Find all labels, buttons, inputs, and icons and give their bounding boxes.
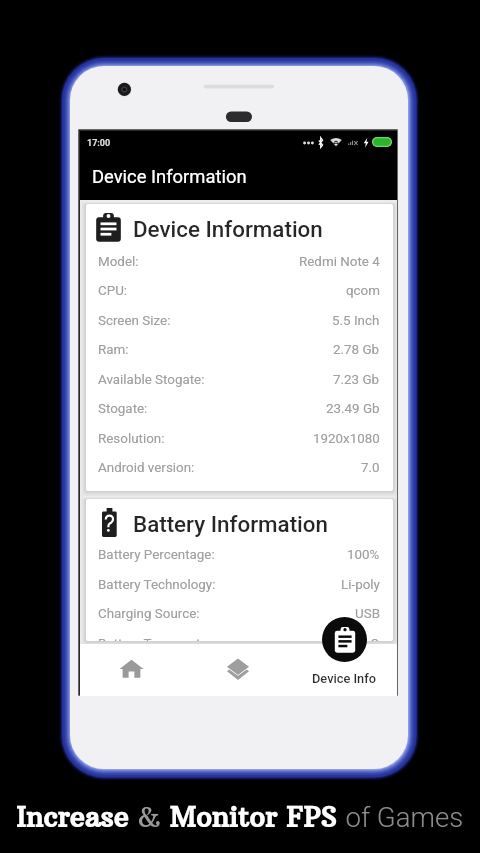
button[interactable]: Home [80,644,185,696]
button[interactable]: Device Information [86,204,393,491]
staticText: 2.78 Gb [333,342,380,358]
staticText: Device Information [92,166,247,188]
staticText: Charging Source: [98,606,200,622]
button[interactable]: Battery Information [86,499,393,641]
staticText: qcom [346,283,380,299]
staticText: Stogate: [98,401,148,417]
staticText: 23.49 Gb [326,401,380,417]
staticText: Model: [98,254,139,270]
staticText: Battery Technology: [98,577,216,593]
button[interactable]: Device Info [322,617,367,662]
staticText: 5.5 Inch [332,313,380,329]
staticText: Battery Information [133,511,328,537]
staticText: 100% [347,547,380,563]
staticText: Device Information [133,216,323,242]
staticText: Battery Temperature: [98,636,223,641]
button[interactable]: Device Information [80,152,397,200]
staticText: Redmi Note 4 [299,254,380,270]
staticText: CPU: [98,283,128,299]
staticText: Android version: [98,460,195,476]
staticText: Increase & Monitor FPS of Games [16,800,464,835]
staticText: USB [355,606,380,622]
staticText: Available Stogate: [98,372,205,388]
staticText: 7.23 Gb [333,372,380,388]
staticText: 1920x1080 [313,431,380,447]
staticText: Li-poly [341,577,380,593]
staticText: Resolution: [98,431,165,447]
staticText: 7.0 [361,460,380,476]
staticText: 30 C [352,636,380,641]
staticText: Device Info [312,671,376,686]
button[interactable]: Layers [185,644,291,696]
staticText: Ram: [98,342,129,358]
staticText: Battery Percentage: [98,547,215,563]
button[interactable]: Device Info [291,644,397,696]
staticText: 17:00 [87,138,111,149]
staticText: Screen Size: [98,313,171,329]
